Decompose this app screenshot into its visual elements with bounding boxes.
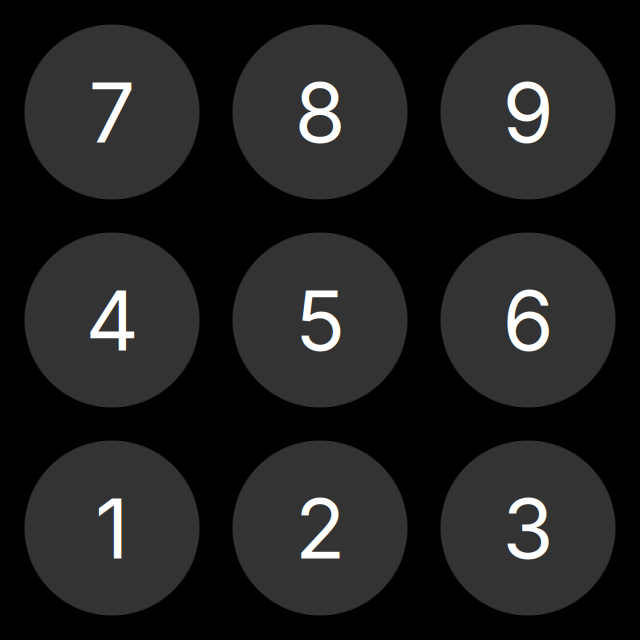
button[interactable]: 1: [24, 440, 199, 615]
staticText: 4: [85, 270, 138, 370]
staticText: 9: [502, 62, 553, 162]
staticText: 3: [502, 478, 553, 578]
staticText: 7: [88, 62, 135, 162]
staticText: 5: [295, 270, 345, 370]
button[interactable]: 4: [24, 232, 199, 407]
button[interactable]: 2: [232, 440, 407, 615]
button[interactable]: 3: [440, 440, 615, 615]
button[interactable]: 5: [232, 232, 407, 407]
staticText: 6: [502, 270, 553, 370]
button[interactable]: 9: [440, 24, 615, 199]
button[interactable]: 6: [440, 232, 615, 407]
staticText: 2: [295, 478, 345, 578]
staticText: 1: [95, 478, 129, 578]
button[interactable]: 7: [24, 24, 199, 199]
staticText: 8: [294, 62, 345, 162]
button[interactable]: 8: [232, 24, 407, 199]
